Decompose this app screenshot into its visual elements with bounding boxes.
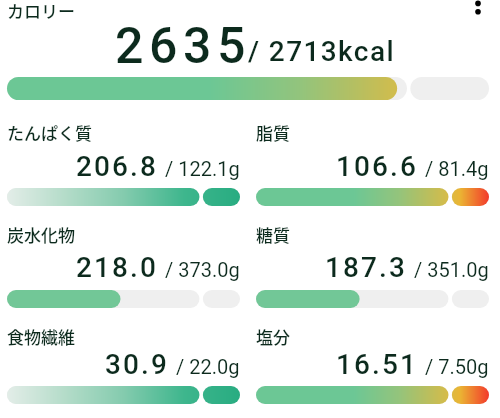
staticText: / 7.50g xyxy=(425,355,489,378)
staticText: 炭水化物 xyxy=(7,222,75,247)
staticText: 糖質 xyxy=(256,222,290,247)
staticText: 187.3 xyxy=(325,251,407,284)
staticText: / 2713kcal xyxy=(248,35,396,68)
button[interactable]: 脂質 xyxy=(256,124,489,206)
staticText: 脂質 xyxy=(256,120,290,145)
staticText: カロリー xyxy=(7,0,75,23)
staticText: / 22.0g xyxy=(176,355,240,378)
staticText: 16.51 xyxy=(336,348,418,381)
staticText: 2635 xyxy=(115,17,252,76)
staticText: / 351.0g xyxy=(414,258,489,281)
staticText: 218.0 xyxy=(76,251,158,284)
staticText: / 122.1g xyxy=(165,157,240,180)
button[interactable]: 炭水化物 xyxy=(7,226,240,308)
button[interactable]: 塩分 xyxy=(256,328,489,404)
button[interactable]: More options xyxy=(467,0,489,13)
staticText: / 373.0g xyxy=(165,258,240,281)
button[interactable]: 糖質 xyxy=(256,226,489,308)
staticText: 塩分 xyxy=(256,324,290,349)
staticText: 30.9 xyxy=(105,348,169,381)
button[interactable]: 食物繊維 xyxy=(7,328,240,404)
button[interactable]: たんぱく質 xyxy=(7,124,240,206)
staticText: / 81.4g xyxy=(425,157,489,180)
staticText: たんぱく質 xyxy=(7,120,92,145)
staticText: 206.8 xyxy=(76,150,158,183)
staticText: 106.6 xyxy=(336,150,418,183)
staticText: 食物繊維 xyxy=(7,324,75,349)
